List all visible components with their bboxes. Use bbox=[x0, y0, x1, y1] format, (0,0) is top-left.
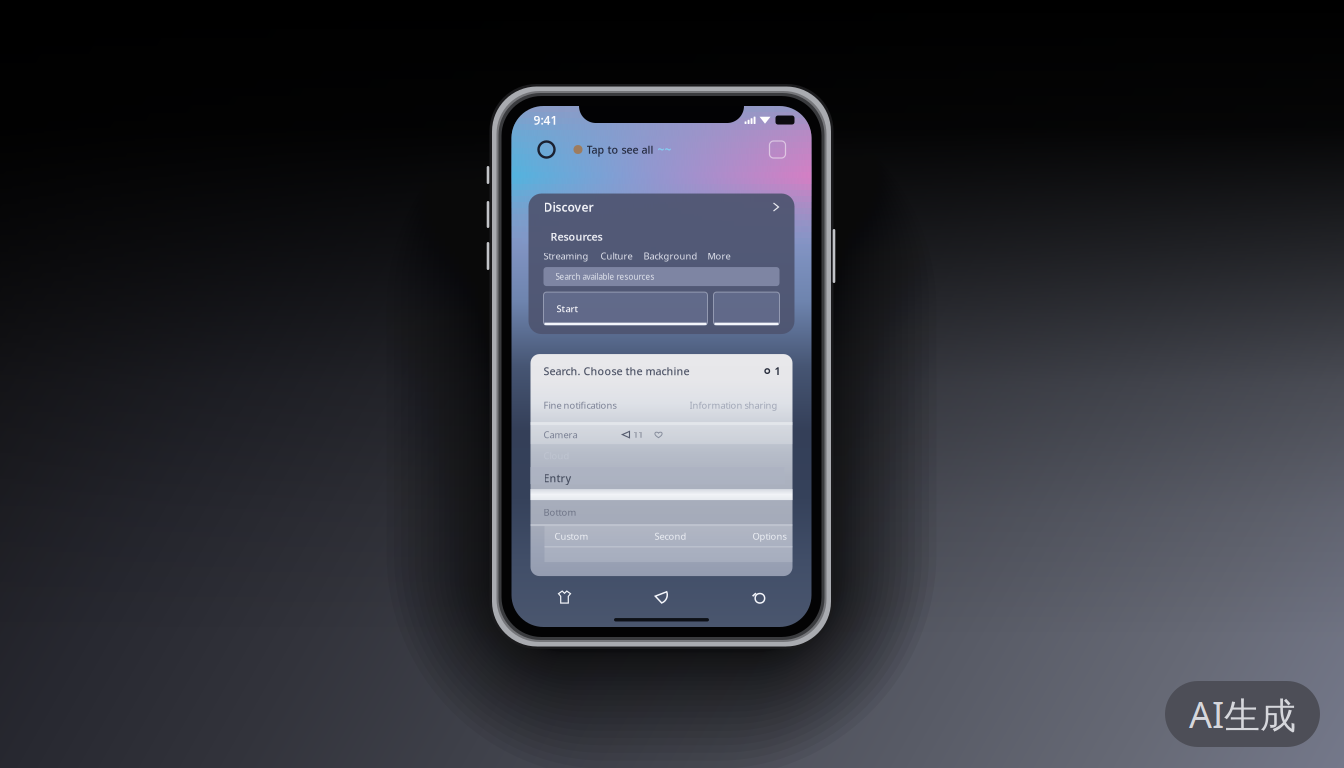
button[interactable]: Messages bbox=[632, 583, 690, 611]
button[interactable]: Search available resources bbox=[543, 267, 779, 286]
staticText: 1 bbox=[774, 364, 780, 378]
staticText: 11 bbox=[633, 429, 643, 440]
staticText: 9:41 bbox=[533, 112, 557, 128]
button[interactable]: Options bbox=[752, 530, 786, 542]
staticText: AI生成 bbox=[1189, 690, 1296, 738]
staticText: Second bbox=[654, 530, 686, 542]
button[interactable]: Second bbox=[654, 530, 686, 542]
button[interactable]: Search bbox=[729, 583, 787, 611]
staticText: Start bbox=[556, 302, 578, 315]
staticText: Fine notifications bbox=[543, 399, 616, 411]
button[interactable]: Filter bbox=[713, 292, 779, 325]
staticText: Streaming bbox=[543, 250, 588, 262]
staticText: More bbox=[707, 250, 730, 262]
button[interactable]: Wardrobe bbox=[535, 583, 593, 611]
staticText: Culture bbox=[600, 250, 632, 262]
staticText: ~~ bbox=[657, 142, 671, 157]
staticText: Search available resources bbox=[555, 271, 654, 282]
staticText: Options bbox=[752, 530, 786, 542]
staticText: Custom bbox=[554, 530, 588, 542]
staticText: Tap to see all bbox=[586, 142, 653, 157]
staticText: Entry bbox=[543, 471, 571, 485]
button[interactable]: See all bbox=[768, 198, 783, 216]
button[interactable]: Start bbox=[543, 292, 707, 325]
staticText: Information sharing bbox=[689, 399, 777, 411]
staticText: Resources bbox=[550, 229, 602, 244]
staticText: Search. Choose the machine bbox=[543, 364, 689, 378]
staticText: Background bbox=[643, 250, 697, 262]
button[interactable]: Custom bbox=[554, 530, 588, 542]
staticText: Discover bbox=[543, 199, 593, 215]
staticText: Camera bbox=[543, 428, 577, 441]
button[interactable]: Saved bbox=[764, 136, 790, 163]
staticText: Bottom bbox=[543, 506, 576, 518]
button[interactable]: Account bbox=[533, 136, 559, 162]
